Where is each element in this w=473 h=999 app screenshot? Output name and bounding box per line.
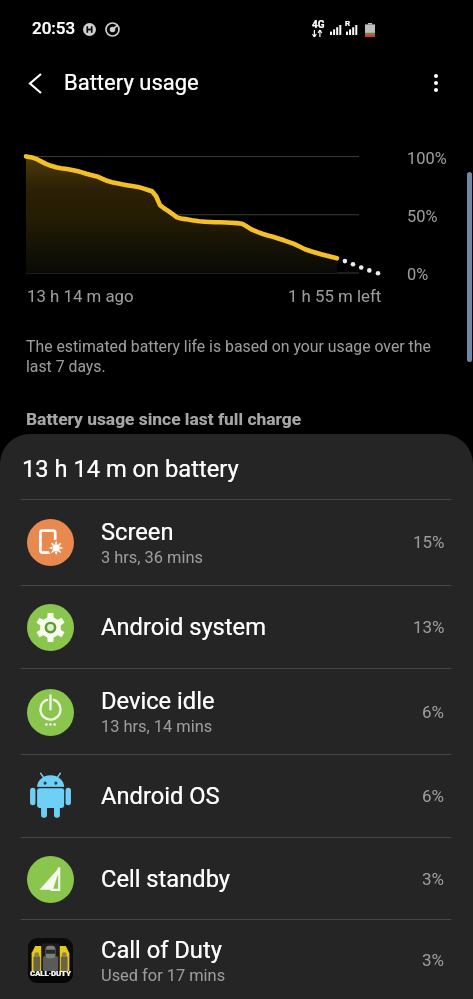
staticText: 3% xyxy=(422,950,445,970)
staticText: 3% xyxy=(422,869,445,889)
staticText: 13 h 14 m ago xyxy=(27,286,134,306)
button[interactable]: Cell standby xyxy=(0,837,473,920)
staticText: Device idle xyxy=(101,687,215,715)
staticText: Battery usage since last full charge xyxy=(26,409,302,429)
button[interactable]: Android OS xyxy=(0,754,473,837)
staticText: 13 hrs, 14 mins xyxy=(101,717,213,736)
button[interactable]: More options xyxy=(414,61,458,105)
staticText: Android OS xyxy=(101,782,220,810)
staticText: 15% xyxy=(413,532,445,552)
staticText: The estimated battery life is based on y… xyxy=(26,337,438,375)
staticText: 13% xyxy=(413,617,445,637)
staticText: Android system xyxy=(101,613,266,641)
staticText: Used for 17 mins xyxy=(101,966,226,985)
button[interactable]: Device idle xyxy=(0,668,473,755)
staticText: 50% xyxy=(407,207,438,226)
staticText: 100% xyxy=(407,149,447,168)
button[interactable]: Screen xyxy=(0,499,473,585)
staticText: 13 h 14 m on battery xyxy=(22,455,239,483)
staticText: R xyxy=(345,19,351,28)
staticText: Cell standby xyxy=(101,865,231,893)
staticText: Call of Duty xyxy=(101,936,222,964)
staticText: 4G xyxy=(312,19,325,31)
button[interactable]: CALL·DUTY xyxy=(0,919,473,999)
button[interactable]: Android system xyxy=(0,585,473,668)
staticText: Screen xyxy=(101,518,174,546)
staticText: 20:53 xyxy=(32,18,76,38)
staticText: 1 h 55 m left xyxy=(288,286,382,306)
staticText: 0% xyxy=(407,265,429,284)
button[interactable]: Back xyxy=(13,61,57,105)
staticText: 3 hrs, 36 mins xyxy=(101,548,203,567)
staticText: 6% xyxy=(422,702,445,722)
staticText: CALL·DUTY xyxy=(30,969,71,978)
staticText: 6% xyxy=(422,786,445,806)
staticText: Battery usage xyxy=(64,70,199,96)
